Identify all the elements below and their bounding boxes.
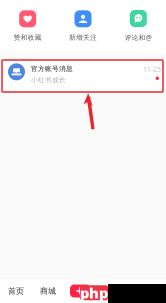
button[interactable]: 发布 xyxy=(64,281,96,301)
button[interactable]: 评论和@ xyxy=(111,10,166,42)
button[interactable]: 赞和收藏 xyxy=(0,10,55,41)
staticText: 赞和收藏 xyxy=(14,33,42,41)
staticText: 官方账号消息 xyxy=(31,65,73,73)
button[interactable]: 商城 xyxy=(32,281,64,301)
button[interactable]: 首页 xyxy=(0,281,32,301)
staticText: 小红书成长 xyxy=(31,76,66,84)
staticText: 首页 xyxy=(8,286,24,296)
button[interactable]: 官方账号消息 xyxy=(0,61,166,91)
staticText: 11-25 xyxy=(143,65,161,74)
staticText: 商城 xyxy=(40,286,56,296)
button[interactable]: 新增关注 xyxy=(55,10,111,41)
staticText: 评论和@ xyxy=(125,33,152,42)
staticText: 新增关注 xyxy=(69,33,97,41)
staticText: + xyxy=(76,282,84,300)
staticText: php xyxy=(80,283,108,302)
